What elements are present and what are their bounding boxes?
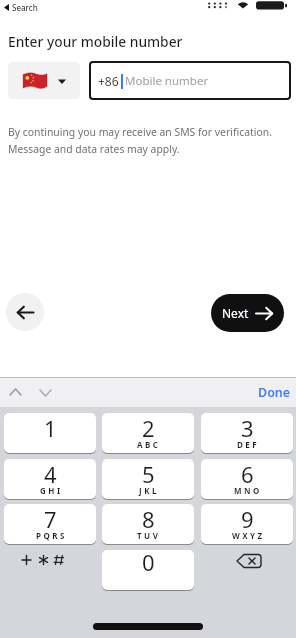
button[interactable] bbox=[4, 550, 96, 590]
staticText: 9 bbox=[241, 504, 254, 534]
staticText: WXYZ bbox=[232, 530, 265, 541]
staticText: Search bbox=[12, 2, 38, 13]
staticText: ABC bbox=[137, 439, 161, 450]
button[interactable]: 8 bbox=[102, 504, 194, 544]
button[interactable]: 6 bbox=[201, 459, 293, 499]
staticText: GHI bbox=[40, 485, 63, 496]
staticText: +86 bbox=[98, 73, 119, 89]
staticText: 5 bbox=[142, 459, 155, 489]
button[interactable]: 4 bbox=[4, 459, 96, 499]
staticText: DEF bbox=[237, 439, 260, 450]
staticText: 4 bbox=[44, 459, 57, 489]
staticText: By continuing you may receive an SMS for… bbox=[8, 125, 272, 156]
button[interactable]: Search bbox=[4, 2, 38, 13]
button[interactable]: Next bbox=[211, 294, 284, 332]
staticText: JKL bbox=[139, 485, 159, 496]
button[interactable] bbox=[201, 550, 293, 590]
staticText: 6 bbox=[241, 459, 254, 489]
staticText: Mobile number bbox=[125, 73, 209, 89]
button[interactable]: 7 bbox=[4, 504, 96, 544]
staticText: Enter your mobile number bbox=[8, 32, 183, 51]
staticText: Done bbox=[258, 384, 291, 401]
staticText: 7 bbox=[44, 504, 57, 534]
staticText: 8 bbox=[142, 504, 155, 534]
staticText: 1 bbox=[44, 413, 57, 443]
button[interactable] bbox=[8, 62, 80, 99]
staticText: 2 bbox=[142, 413, 155, 443]
button[interactable] bbox=[5, 381, 26, 403]
staticText: 3 bbox=[241, 413, 254, 443]
button[interactable]: 2 bbox=[102, 413, 194, 453]
staticText: MNO bbox=[234, 485, 262, 496]
button[interactable]: 9 bbox=[201, 504, 293, 544]
staticText: 0 bbox=[142, 550, 155, 577]
button[interactable] bbox=[35, 381, 56, 403]
button[interactable]: +86 bbox=[89, 61, 291, 100]
staticText: Next bbox=[222, 305, 249, 321]
button[interactable]: 1 bbox=[4, 413, 96, 453]
staticText: PQRS bbox=[36, 530, 67, 541]
button[interactable]: Done bbox=[252, 377, 296, 407]
button[interactable]: 5 bbox=[102, 459, 194, 499]
button[interactable]: 3 bbox=[201, 413, 293, 453]
button[interactable] bbox=[6, 293, 44, 331]
button[interactable]: 0 bbox=[102, 550, 194, 590]
staticText: TUV bbox=[137, 530, 161, 541]
